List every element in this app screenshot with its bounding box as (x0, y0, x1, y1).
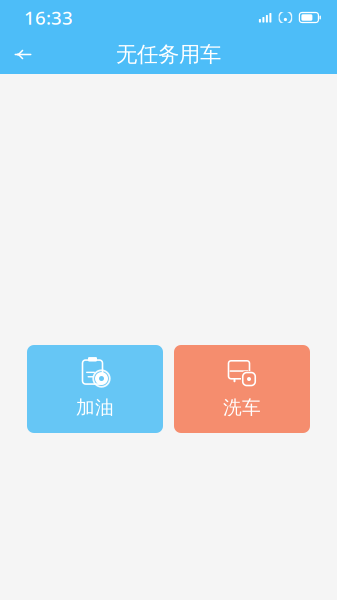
staticText: 加油 (76, 396, 114, 419)
staticText: 无任务用车 (116, 41, 221, 68)
button[interactable]: 加油 (27, 345, 163, 433)
staticText: 16:33 (24, 5, 73, 30)
button[interactable]: 洗车 (174, 345, 310, 433)
button[interactable]: Back (0, 35, 46, 74)
staticText: 洗车 (223, 396, 261, 419)
